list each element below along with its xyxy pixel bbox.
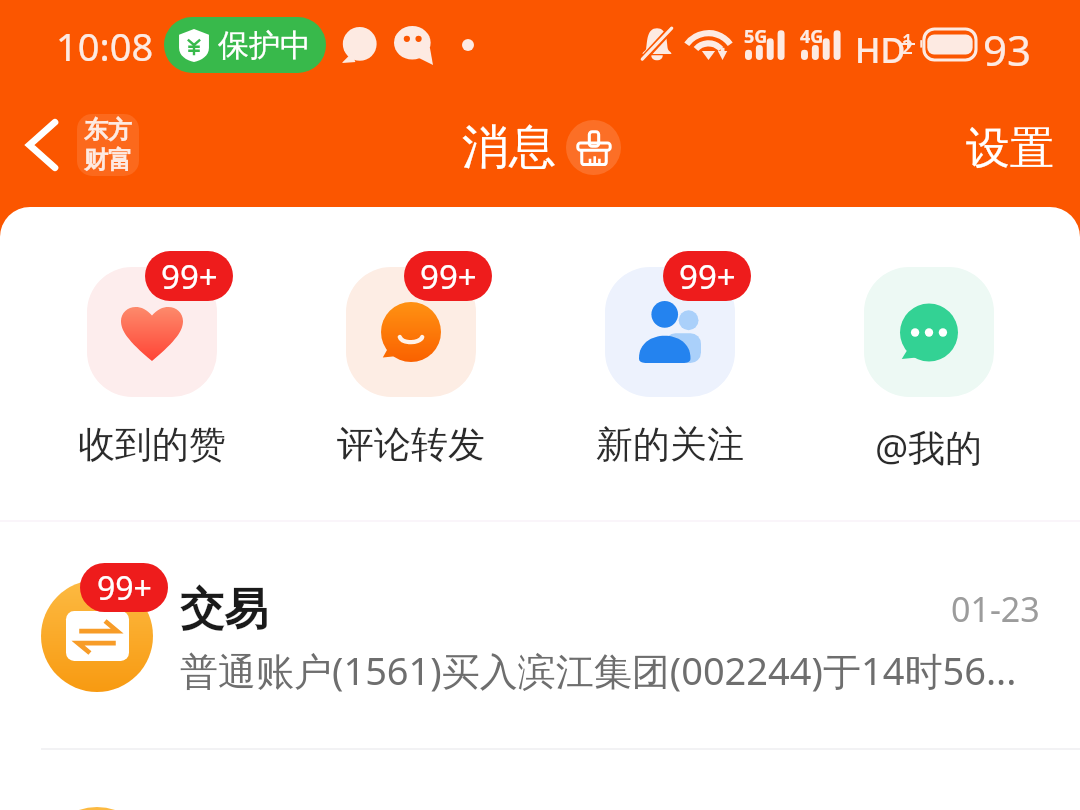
staticText: 10:08 <box>56 20 154 72</box>
button[interactable]: East Money <box>77 114 139 176</box>
staticText: 5G <box>744 24 768 49</box>
staticText: HD <box>855 27 906 73</box>
staticText: 收到的赞 <box>78 421 226 468</box>
staticText: 1 <box>902 28 913 54</box>
staticText: 4G <box>800 24 824 49</box>
button[interactable]: 99+ <box>0 522 1080 750</box>
staticText: 93 <box>983 21 1032 78</box>
staticText: 评论转发 <box>337 421 485 468</box>
staticText: 东方 <box>84 115 132 145</box>
button[interactable]: 设置 <box>946 109 1074 188</box>
staticText: @我的 <box>875 421 983 472</box>
staticText: 01-23 <box>951 586 1040 632</box>
staticText: 普通账户(1561)买入滨江集团(002244)于14时56... <box>180 644 1040 696</box>
staticText: 消息 <box>462 118 556 177</box>
button[interactable]: Clear messages <box>566 120 621 175</box>
staticText: 财富 <box>84 145 132 175</box>
button[interactable]: 99+ <box>540 267 799 468</box>
button[interactable]: 99+ <box>22 267 281 468</box>
staticText: 2 <box>902 34 913 60</box>
button[interactable]: @我的 <box>799 267 1058 472</box>
staticText: 99+ <box>420 254 477 299</box>
staticText: 设置 <box>966 121 1054 176</box>
button[interactable]: 99+ <box>281 267 540 468</box>
button[interactable]: Back <box>8 111 76 179</box>
staticText: 99+ <box>97 566 152 610</box>
staticText: 交易 <box>180 582 268 637</box>
staticText: 99+ <box>161 254 218 299</box>
staticText: 保护中 <box>218 26 311 65</box>
staticText: 99+ <box>679 254 736 299</box>
staticText: 新的关注 <box>596 421 744 468</box>
